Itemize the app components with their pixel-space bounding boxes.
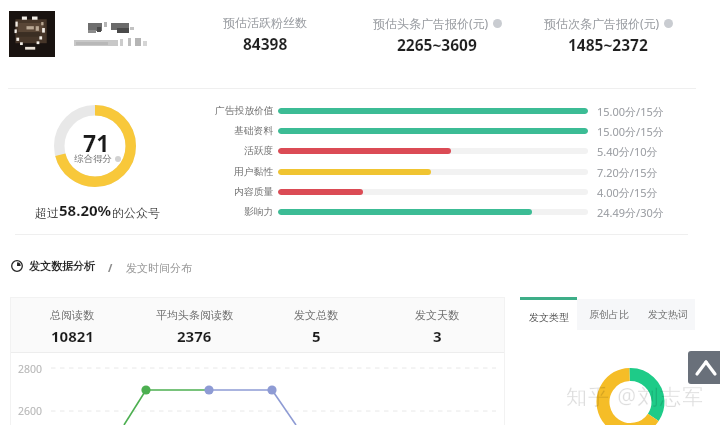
button[interactable]: 内容质量: [180, 182, 670, 202]
staticText: 预估活跃粉丝数: [223, 15, 307, 30]
staticText: /: [108, 261, 113, 275]
button[interactable]: 活跃度: [180, 141, 670, 161]
staticText: 71: [83, 127, 110, 158]
staticText: 10821: [51, 326, 94, 346]
staticText: 84398: [243, 33, 288, 54]
button[interactable]: 发文时间分布: [126, 261, 192, 275]
staticText: 5: [312, 326, 321, 346]
staticText: 2600: [18, 404, 43, 418]
staticText: 2800: [18, 362, 43, 376]
button[interactable]: About the overall score: [115, 156, 121, 162]
staticText: 发文类型: [529, 311, 569, 324]
staticText: 发文总数: [294, 308, 338, 322]
staticText: 总阅读数: [50, 308, 94, 322]
staticText: 发文时间分布: [126, 261, 192, 275]
staticText: 预估头条广告报价(元): [373, 15, 489, 31]
button[interactable]: 用户黏性: [180, 162, 670, 182]
staticText: 发文热词: [648, 308, 688, 321]
staticText: 知乎 @刘志军: [566, 382, 705, 411]
button[interactable]: 发文类型: [520, 297, 577, 336]
staticText: 15.00分/15分: [597, 104, 664, 119]
button[interactable]: More information about 预估次条广告报价(元): [664, 19, 673, 28]
staticText: 5.40分/10分: [597, 144, 658, 159]
button[interactable]: 影响力: [180, 202, 670, 222]
staticText: 58.20%: [59, 200, 112, 220]
staticText: 2265~3609: [397, 34, 477, 55]
button[interactable]: Back to top: [688, 351, 720, 384]
staticText: 影响力: [244, 206, 274, 218]
staticText: 的公众号: [112, 205, 160, 220]
button[interactable]: 基础资料: [180, 121, 670, 141]
staticText: 24.49分/30分: [597, 205, 664, 220]
staticText: 综合得分: [74, 153, 112, 165]
staticText: 4.00分/15分: [597, 185, 658, 200]
staticText: 用户黏性: [234, 166, 274, 178]
staticText: 2376: [177, 326, 212, 346]
staticText: 7.20分/15分: [597, 165, 658, 180]
staticText: 平均头条阅读数: [156, 308, 233, 322]
staticText: 3: [433, 326, 442, 346]
staticText: 预估次条广告报价(元): [544, 15, 660, 31]
button[interactable]: 原创占比: [577, 299, 641, 330]
staticText: 广告投放价值: [215, 105, 274, 117]
button[interactable]: 广告投放价值: [180, 101, 670, 121]
button[interactable]: More information about 预估头条广告报价(元): [493, 19, 502, 28]
staticText: 1485~2372: [568, 34, 648, 55]
staticText: 基础资料: [234, 125, 274, 137]
staticText: 内容质量: [234, 186, 274, 198]
button[interactable]: 发文数据分析: [11, 259, 95, 273]
staticText: 超过: [35, 205, 59, 220]
staticText: 15.00分/15分: [597, 124, 664, 139]
button[interactable]: 发文热词: [641, 299, 695, 330]
staticText: 发文天数: [415, 308, 459, 322]
staticText: 活跃度: [244, 145, 274, 157]
staticText: 原创占比: [589, 308, 629, 321]
staticText: 发文数据分析: [29, 259, 95, 273]
